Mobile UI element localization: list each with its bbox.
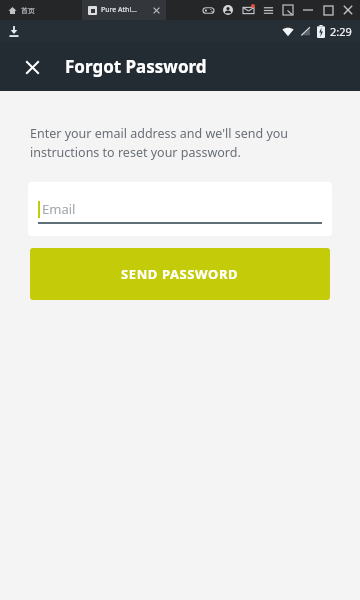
button[interactable]: Close tab: [153, 7, 160, 14]
staticText: 2:29: [330, 24, 352, 39]
button[interactable]: Mail: [238, 0, 258, 20]
button[interactable]: Menu: [258, 0, 278, 20]
staticText: Forgot Password: [65, 55, 207, 78]
staticText: 首页: [21, 6, 35, 15]
button[interactable]: Minimize: [298, 0, 318, 20]
button[interactable]: Restore window: [278, 0, 298, 20]
button[interactable]: Close: [12, 47, 52, 87]
button[interactable]: Pure Athl...: [82, 0, 166, 20]
button[interactable]: Email: [28, 182, 332, 236]
button[interactable]: SEND PASSWORD: [30, 248, 330, 300]
staticText: SEND PASSWORD: [121, 265, 239, 283]
staticText: Email: [42, 200, 76, 218]
staticText: Enter your email address and we'll send …: [30, 125, 320, 161]
button[interactable]: Maximize: [318, 0, 338, 20]
staticText: Pure Athl...: [101, 5, 137, 15]
button[interactable]: Account: [218, 0, 238, 20]
button[interactable]: Close window: [338, 0, 358, 20]
button[interactable]: Games: [198, 0, 218, 20]
